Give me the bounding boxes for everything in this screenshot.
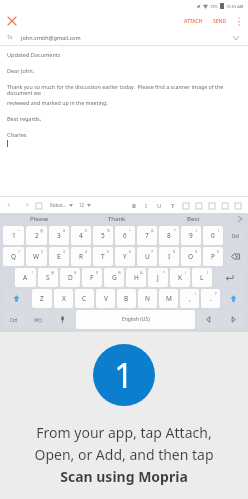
button[interactable]: Align left xyxy=(192,199,205,212)
button[interactable]: 9 xyxy=(181,226,201,245)
button[interactable]: R xyxy=(71,247,91,266)
staticText: ? xyxy=(215,291,217,296)
staticText: ^ xyxy=(129,228,132,233)
staticText: H xyxy=(134,273,139,282)
button[interactable]: H xyxy=(126,268,146,287)
button[interactable]: D xyxy=(60,268,80,287)
button[interactable]: C xyxy=(75,289,94,308)
button[interactable]: K xyxy=(170,268,190,287)
staticText: I xyxy=(168,252,171,261)
button[interactable]: Close xyxy=(4,13,20,29)
button[interactable]: Best xyxy=(155,215,232,223)
button[interactable]: More options xyxy=(232,14,246,28)
button[interactable]: Underline xyxy=(153,199,166,212)
staticText: & xyxy=(140,270,143,275)
button[interactable]: Del xyxy=(225,226,245,245)
staticText: 1 xyxy=(114,352,134,398)
staticText: @ xyxy=(40,228,44,233)
button[interactable]: J xyxy=(148,268,168,287)
button[interactable]: P xyxy=(203,247,223,266)
staticText: M xyxy=(166,294,172,303)
button[interactable]: English (US) xyxy=(76,310,195,329)
staticText: R xyxy=(79,252,84,261)
button[interactable]: U xyxy=(137,247,157,266)
staticText: reviewed and marked up in the meeting. xyxy=(7,99,108,106)
staticText: $ xyxy=(96,270,99,275)
button[interactable]: Ctrl xyxy=(3,310,25,329)
button[interactable]: W xyxy=(26,247,47,266)
button[interactable]: More suggestions xyxy=(232,216,248,222)
button[interactable]: Expand recipients xyxy=(231,33,241,43)
button[interactable]: Thank xyxy=(78,215,155,223)
button[interactable]: M xyxy=(159,289,178,308)
button[interactable]: Text color xyxy=(166,199,179,212)
button[interactable]: 8 xyxy=(159,226,179,245)
button[interactable]: G xyxy=(104,268,124,287)
button[interactable]: Bold xyxy=(127,199,140,212)
button[interactable]: 0 xyxy=(203,226,223,245)
button[interactable]: Right xyxy=(222,310,245,329)
staticText: * xyxy=(174,228,176,233)
staticText: 0 xyxy=(211,231,215,240)
button[interactable]: Z xyxy=(32,289,52,308)
button[interactable]: Italic xyxy=(140,199,153,212)
staticText: Updated Documents xyxy=(7,51,61,58)
button[interactable]: F xyxy=(82,268,102,287)
button[interactable]: V xyxy=(96,289,115,308)
button[interactable]: O xyxy=(181,247,201,266)
button[interactable]: Please xyxy=(0,215,78,223)
button[interactable]: Q xyxy=(3,247,24,266)
button[interactable]: N xyxy=(138,289,157,308)
button[interactable]: Align center xyxy=(205,199,218,212)
button[interactable]: Y xyxy=(115,247,135,266)
button[interactable]: , xyxy=(180,289,199,308)
staticText: 3 xyxy=(57,231,61,240)
button[interactable]: T xyxy=(93,247,113,266)
staticText: F xyxy=(90,273,94,282)
staticText: N xyxy=(145,294,150,303)
button[interactable]: E xyxy=(49,247,69,266)
staticText: Best regards, xyxy=(7,115,42,122)
staticText: 9 xyxy=(195,249,198,254)
button[interactable]: . xyxy=(201,289,220,308)
staticText: 9 xyxy=(189,231,193,240)
button[interactable]: I xyxy=(159,247,179,266)
button[interactable]: Robot... xyxy=(50,202,67,208)
button[interactable]: S xyxy=(38,268,58,287)
button[interactable]: 7 xyxy=(137,226,157,245)
button[interactable]: Backspace xyxy=(225,247,245,266)
button[interactable]: B xyxy=(117,289,136,308)
button[interactable]: Highlight xyxy=(179,199,192,212)
button[interactable]: SEND xyxy=(208,15,232,28)
staticText: 4 xyxy=(79,231,83,240)
staticText: 8 xyxy=(167,231,171,240)
button[interactable]: Voice input xyxy=(51,310,74,329)
button[interactable]: Format painter xyxy=(32,199,45,212)
button[interactable]: 3 xyxy=(49,226,69,245)
button[interactable]: Indent more xyxy=(231,199,244,212)
button[interactable]: !#☺ xyxy=(27,310,49,329)
staticText: ( xyxy=(196,228,198,233)
button[interactable]: Undo xyxy=(4,198,18,212)
button[interactable]: 1 xyxy=(3,226,24,245)
staticText: T xyxy=(101,252,105,261)
button[interactable]: Left xyxy=(197,310,220,329)
staticText: I xyxy=(145,202,148,210)
button[interactable]: 6 xyxy=(115,226,135,245)
button[interactable]: 2 xyxy=(26,226,47,245)
button[interactable]: Shift xyxy=(3,289,30,308)
button[interactable]: Shift xyxy=(222,289,245,308)
button[interactable]: Redo xyxy=(18,198,32,212)
staticText: 72% xyxy=(210,4,218,9)
button[interactable]: 12 xyxy=(79,202,85,208)
button[interactable]: L xyxy=(192,268,212,287)
button[interactable]: A xyxy=(15,268,36,287)
staticText: % xyxy=(118,270,121,275)
button[interactable]: Enter xyxy=(214,268,245,287)
button[interactable]: Indent less xyxy=(218,199,231,212)
button[interactable]: 5 xyxy=(93,226,113,245)
button[interactable]: ATTACH xyxy=(179,15,208,28)
button[interactable]: X xyxy=(54,289,73,308)
staticText: ATTACH xyxy=(184,18,203,25)
button[interactable]: 4 xyxy=(71,226,91,245)
